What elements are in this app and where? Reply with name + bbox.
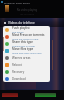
button[interactable]: Push playlist — [3, 26, 50, 33]
staticText: Download — [12, 77, 26, 81]
staticText: Move new type share here — [12, 51, 42, 54]
staticText: See online — [12, 30, 24, 33]
button[interactable]: Warnes areas — [3, 54, 50, 61]
staticText: tap to browse — [14, 13, 40, 15]
staticText: Bluetooth audio device — [4, 1, 30, 4]
button[interactable]: Share this type — [3, 40, 50, 47]
button[interactable]: Move files type — [3, 47, 50, 54]
button[interactable]: Most Preso on torrents — [3, 33, 50, 40]
staticText: Most Preso on torrents — [12, 33, 45, 37]
staticText: No video playing — [14, 8, 40, 12]
staticText: Recovery — [12, 70, 25, 74]
staticText: Move the folder to here — [12, 37, 39, 40]
staticText: Warnes areas — [12, 56, 31, 60]
button[interactable]: Recovery — [3, 68, 50, 75]
button[interactable]: Download — [3, 75, 50, 82]
button[interactable]: Reboot — [3, 61, 50, 68]
staticText: Shared files in folder — [12, 44, 36, 47]
staticText: Push playlist — [12, 26, 30, 30]
button[interactable]: Vídeos do telefone — [0, 19, 64, 26]
staticText: Move files type — [12, 47, 34, 51]
staticText: Vídeos do telefone — [8, 21, 35, 25]
staticText: Share this type — [12, 40, 34, 44]
staticText: Reboot — [12, 63, 22, 67]
